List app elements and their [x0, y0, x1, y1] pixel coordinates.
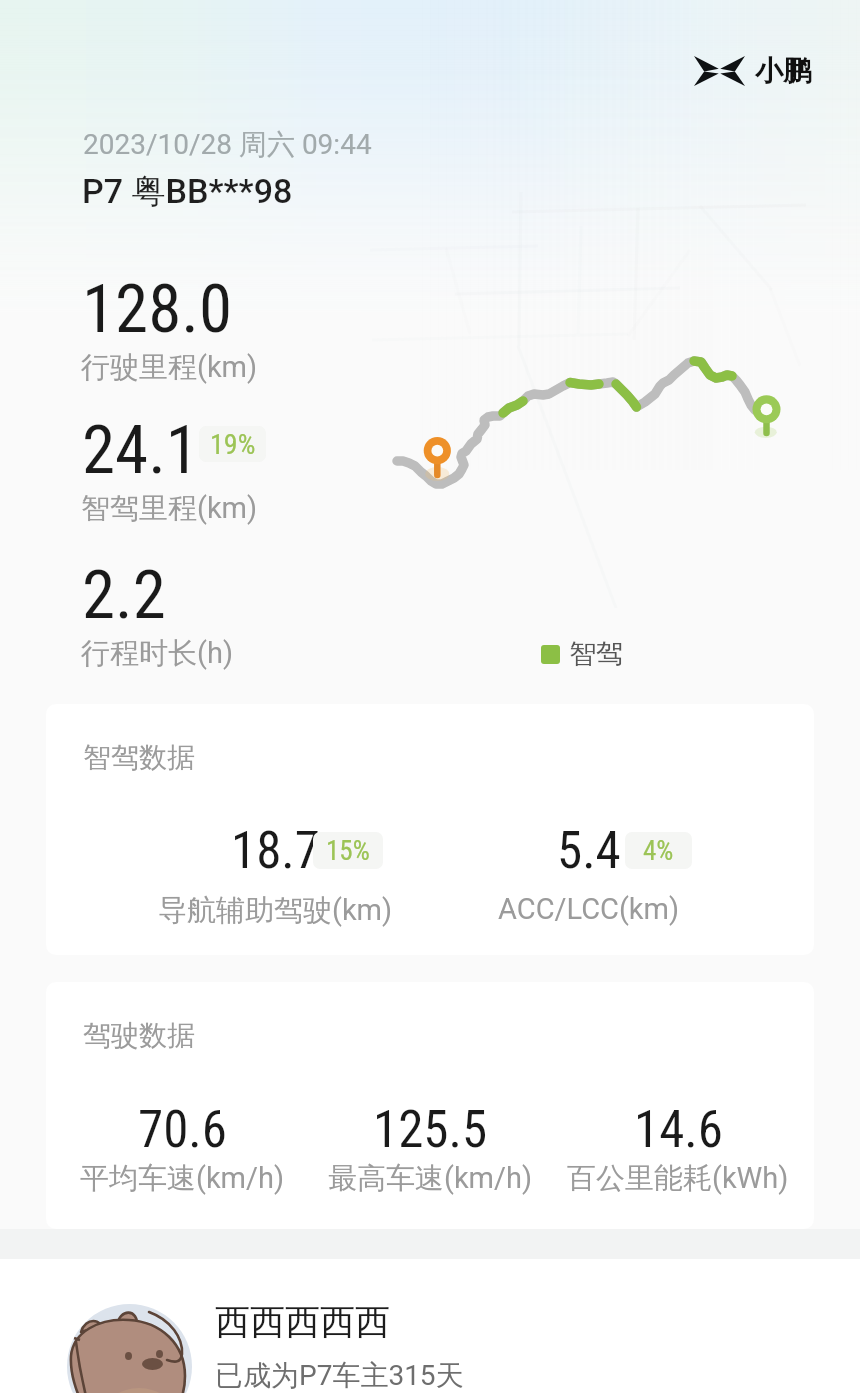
staticText: ACC/LCC(km)	[498, 892, 680, 926]
staticText: 智驾	[569, 637, 623, 671]
staticText: 百公里能耗(kWh)	[567, 1160, 789, 1197]
staticText: 2023/10/28 周六 09:44	[83, 127, 372, 162]
button[interactable]: 西西西西西	[0, 1266, 860, 1393]
staticText: 小鹏	[755, 53, 811, 88]
staticText: 驾驶数据	[83, 1018, 195, 1053]
staticText: 19%	[210, 428, 256, 461]
staticText: 125.5	[373, 1100, 488, 1160]
staticText: 行驶里程(km)	[81, 349, 258, 386]
staticText: 已成为P7车主315天	[215, 1358, 464, 1393]
staticText: 5.4	[557, 821, 621, 881]
staticText: 导航辅助驾驶(km)	[158, 892, 393, 929]
staticText: P7 粤BB***98	[82, 170, 293, 213]
staticText: 2.2	[82, 556, 166, 635]
staticText: 平均车速(km/h)	[80, 1160, 285, 1197]
button[interactable]: 驾驶数据	[46, 982, 814, 1229]
staticText: 24.1	[82, 411, 199, 490]
staticText: 15%	[326, 835, 370, 867]
staticText: 智驾数据	[83, 740, 195, 775]
button[interactable]: 智驾数据	[46, 704, 814, 955]
staticText: 西西西西西	[215, 1300, 390, 1344]
staticText: 18.7	[231, 821, 320, 881]
staticText: 14.6	[634, 1100, 723, 1160]
staticText: 最高车速(km/h)	[328, 1160, 533, 1197]
staticText: 智驾里程(km)	[81, 490, 258, 527]
staticText: 128.0	[82, 270, 232, 349]
staticText: 4%	[643, 835, 674, 867]
staticText: 行程时长(h)	[81, 635, 233, 672]
staticText: 70.6	[138, 1100, 227, 1160]
button[interactable]: XPeng logo	[694, 53, 811, 88]
